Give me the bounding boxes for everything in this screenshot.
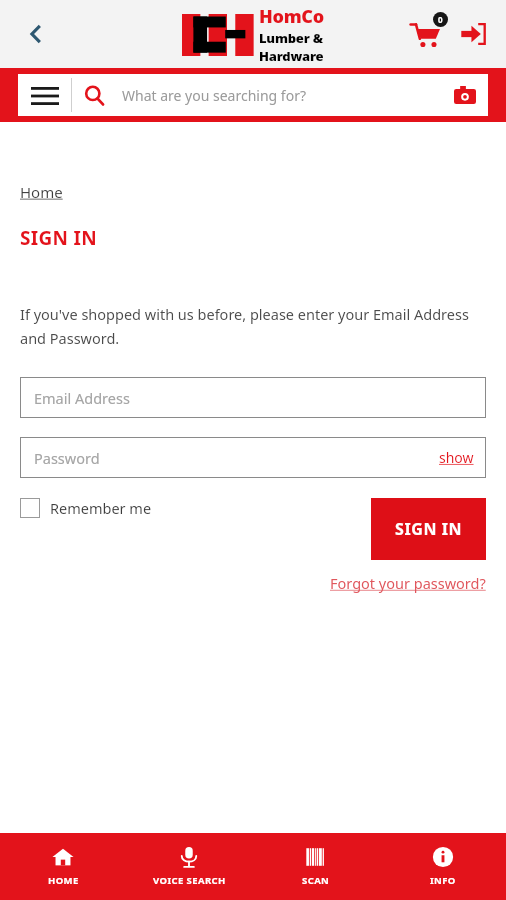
staticText: SIGN IN (20, 225, 97, 251)
staticText: show (439, 448, 474, 467)
button[interactable]: Sign in (452, 13, 494, 55)
button[interactable]: HomCo (182, 4, 324, 65)
staticText: INFO (430, 874, 456, 887)
button[interactable]: SCAN (252, 833, 379, 900)
button[interactable]: Home (20, 182, 63, 202)
staticText: SIGN IN (395, 518, 463, 540)
button[interactable]: What are you searching for? (72, 74, 442, 116)
button[interactable]: Email Address (20, 377, 486, 418)
button[interactable]: Search by photo (442, 74, 488, 116)
staticText: Remember me (50, 498, 152, 518)
staticText: What are you searching for? (122, 86, 307, 105)
button[interactable]: Menu (18, 74, 71, 116)
staticText: Lumber & (259, 29, 323, 47)
button[interactable]: show (439, 448, 474, 467)
staticText: If you've shopped with us before, please… (20, 304, 486, 348)
staticText: VOICE SEARCH (153, 874, 226, 887)
staticText: HOME (48, 874, 79, 887)
button[interactable]: Password (20, 437, 486, 478)
button[interactable]: Back (14, 12, 58, 56)
button[interactable]: Remember me (20, 498, 152, 518)
button[interactable]: HOME (0, 833, 126, 900)
staticText: Email Address (34, 388, 130, 408)
button[interactable]: SIGN IN (371, 498, 486, 560)
staticText: Forgot your password? (330, 573, 486, 593)
staticText: Home (20, 182, 63, 202)
button[interactable]: VOICE SEARCH (126, 833, 252, 900)
staticText: SCAN (302, 874, 330, 887)
button[interactable]: INFO (379, 833, 506, 900)
button[interactable]: Cart (404, 13, 446, 55)
staticText: 0 (438, 14, 443, 25)
staticText: HomCo (259, 4, 324, 29)
staticText: Password (34, 448, 100, 468)
button[interactable]: Forgot your password? (330, 573, 486, 593)
staticText: Hardware (259, 47, 324, 65)
